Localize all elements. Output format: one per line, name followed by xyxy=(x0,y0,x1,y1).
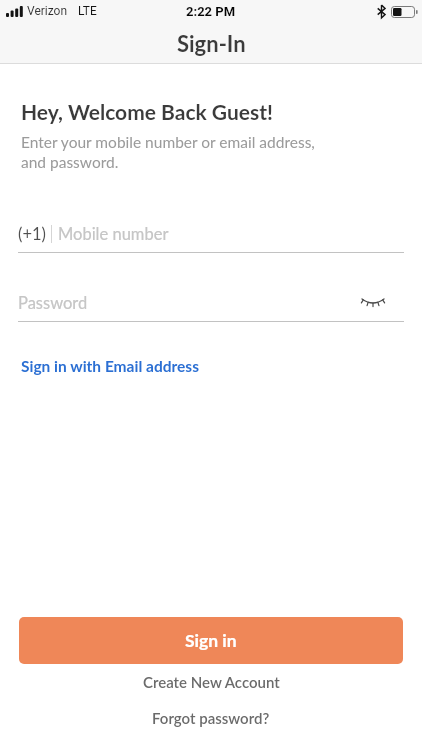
button[interactable]: Sign in with Email address xyxy=(21,357,199,376)
staticText: 2:22 PM xyxy=(186,4,236,19)
button[interactable] xyxy=(362,297,384,309)
staticText: Hey, Welcome Back Guest! xyxy=(21,99,273,124)
button[interactable]: Password xyxy=(18,293,404,322)
button[interactable]: (+1) xyxy=(18,224,404,253)
staticText: Mobile number xyxy=(58,224,169,244)
staticText: Password xyxy=(18,293,88,313)
staticText: (+1) xyxy=(18,224,46,244)
staticText: Create New Account xyxy=(143,673,280,691)
staticText: Sign in xyxy=(185,630,237,651)
staticText: Sign-In xyxy=(177,30,246,56)
staticText: LTE xyxy=(78,4,97,18)
button[interactable]: Sign in xyxy=(19,617,403,664)
button[interactable]: Forgot password? xyxy=(152,709,270,727)
staticText: Enter your mobile number or email addres… xyxy=(21,133,315,172)
button[interactable]: Create New Account xyxy=(143,673,280,691)
staticText: Forgot password? xyxy=(152,709,270,727)
staticText: Verizon xyxy=(27,4,68,18)
